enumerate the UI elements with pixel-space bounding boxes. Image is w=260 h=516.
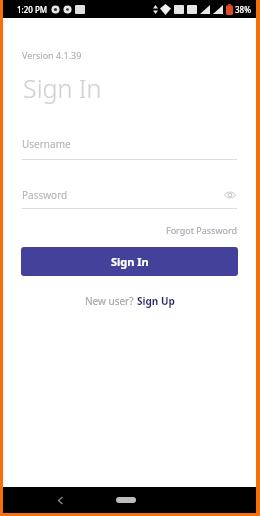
staticText: 1:20 PM — [17, 4, 48, 15]
button[interactable]: Show password — [223, 188, 237, 202]
staticText: Password — [22, 188, 223, 202]
button[interactable]: Home — [111, 492, 141, 508]
staticText: New user? — [85, 294, 137, 308]
button[interactable]: Sign Up — [137, 294, 175, 308]
button[interactable]: Sign In — [21, 247, 238, 276]
staticText: Sign In — [111, 254, 149, 269]
staticText: Username — [22, 137, 71, 151]
staticText: Sign In — [23, 71, 102, 105]
staticText: Version 4.1.39 — [22, 49, 82, 61]
button[interactable]: Password — [22, 188, 237, 209]
button[interactable]: Back — [51, 491, 69, 509]
staticText: 38% — [235, 4, 251, 15]
button[interactable]: Forgot Password — [164, 222, 240, 238]
button[interactable]: Username — [22, 137, 237, 160]
